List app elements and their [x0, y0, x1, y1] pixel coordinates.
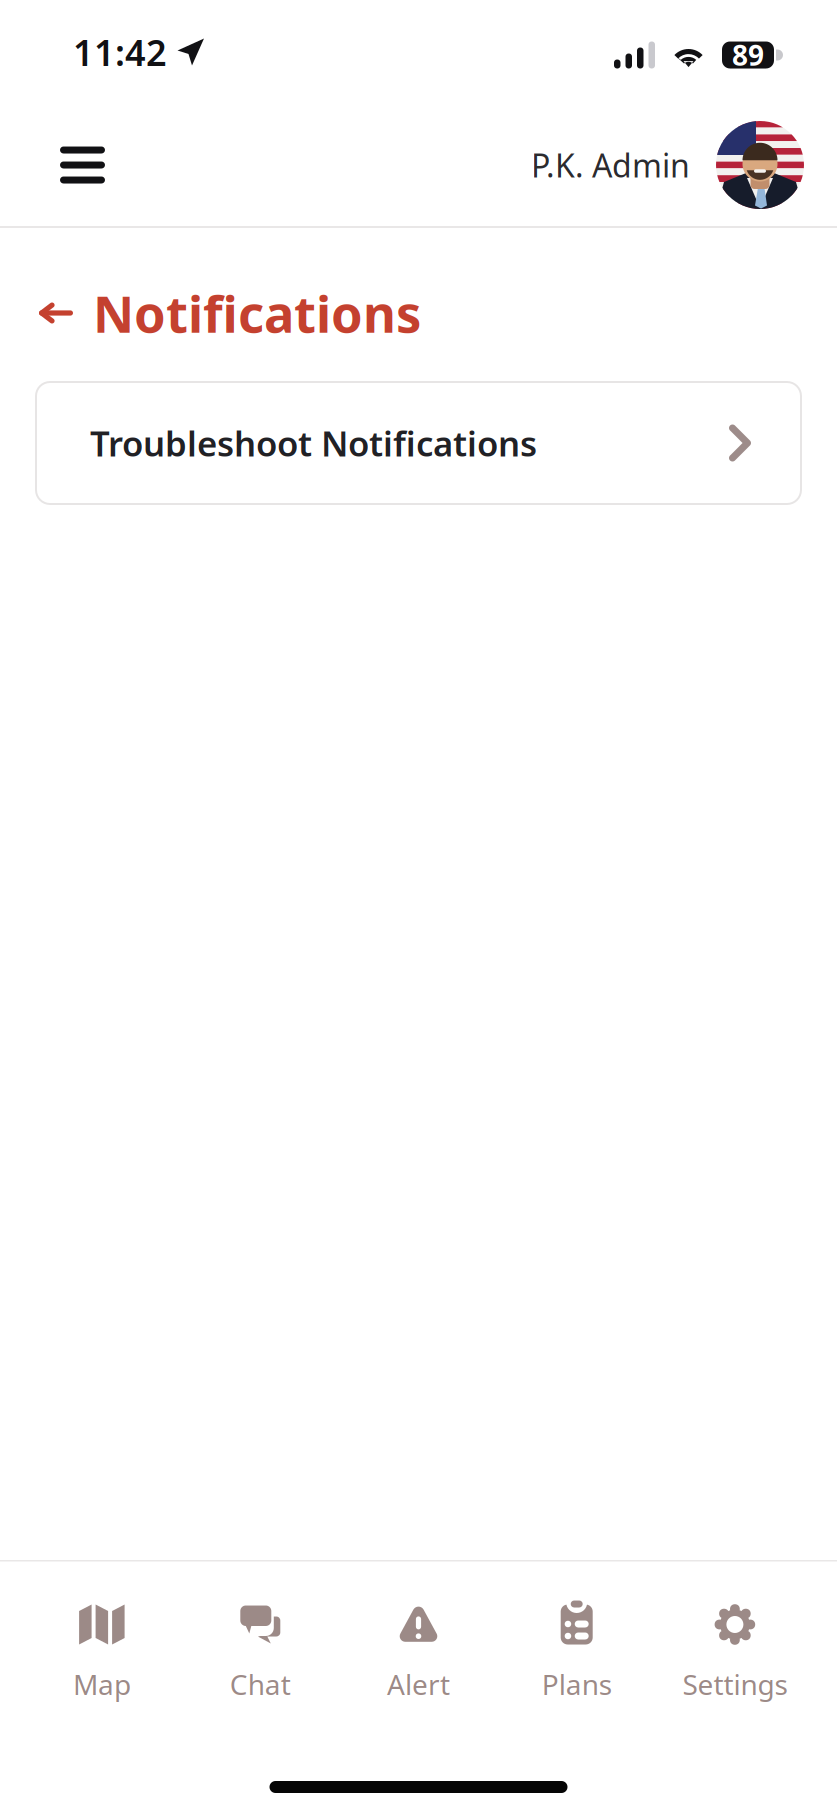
button[interactable]: Alert — [339, 1597, 498, 1709]
staticText: Notifications — [93, 279, 421, 347]
staticText: Map — [73, 1665, 131, 1703]
button[interactable]: Map — [23, 1597, 181, 1709]
staticText: 11:42 — [73, 28, 167, 76]
button[interactable]: Menu — [60, 110, 140, 220]
button[interactable]: Settings — [656, 1597, 814, 1709]
button[interactable]: Troubleshoot Notifications — [36, 382, 801, 504]
button[interactable]: P.K. Admin — [531, 110, 804, 220]
staticText: Plans — [542, 1665, 612, 1703]
staticText: Alert — [387, 1665, 450, 1703]
button[interactable]: Plans — [498, 1597, 656, 1709]
staticText: Troubleshoot Notifications — [90, 420, 537, 466]
staticText: Chat — [230, 1665, 291, 1703]
button[interactable]: Back — [39, 285, 73, 341]
staticText: Settings — [682, 1665, 787, 1703]
staticText: 89 — [732, 36, 764, 74]
button[interactable]: Chat — [181, 1597, 339, 1709]
staticText: P.K. Admin — [531, 144, 690, 186]
